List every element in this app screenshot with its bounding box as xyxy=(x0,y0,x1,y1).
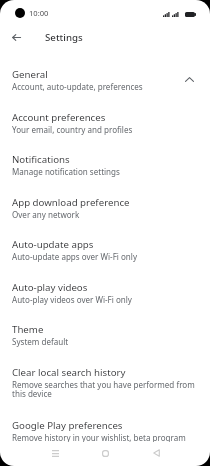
staticText: Remove history in your wishlist, beta pr… xyxy=(12,432,186,442)
button[interactable]: Auto-play videos xyxy=(0,281,210,324)
button[interactable]: Account preferences xyxy=(0,111,210,154)
staticText: Theme xyxy=(12,323,44,336)
staticText: Clear local search history xyxy=(12,366,126,379)
staticText: Settings xyxy=(45,31,83,44)
button[interactable]: Recent apps xyxy=(40,444,70,462)
staticText: Account preferences xyxy=(12,111,106,124)
staticText: Account, auto-update, preferences xyxy=(12,81,143,92)
staticText: Google Play preferences xyxy=(12,419,123,432)
button[interactable]: Clear local search history xyxy=(0,366,210,419)
button[interactable]: Home xyxy=(90,444,120,462)
staticText: Auto-play videos xyxy=(12,281,88,294)
staticText: Notifications xyxy=(12,153,70,166)
staticText: Auto-play videos over Wi-Fi only xyxy=(12,294,132,305)
button[interactable]: App download preference xyxy=(0,196,210,239)
staticText: App download preference xyxy=(12,196,130,209)
button[interactable]: Theme xyxy=(0,323,210,366)
staticText: Auto-update apps xyxy=(12,238,94,251)
button[interactable]: Notifications xyxy=(0,153,210,196)
button[interactable]: Google Play preferences xyxy=(0,419,210,442)
staticText: Over any network xyxy=(12,209,80,220)
staticText: Manage notification settings xyxy=(12,166,120,177)
staticText: System default xyxy=(12,336,69,347)
staticText: Auto-update apps over Wi-Fi only xyxy=(12,251,138,262)
staticText: 10:00 xyxy=(29,8,49,18)
button[interactable]: Auto-update apps xyxy=(0,238,210,281)
staticText: Your email, country and profiles xyxy=(12,124,133,135)
button[interactable]: Navigate up xyxy=(4,25,29,50)
button[interactable]: Back xyxy=(141,444,171,462)
staticText: Remove searches that you have performed … xyxy=(12,379,197,400)
staticText: General xyxy=(12,68,48,81)
button[interactable]: General xyxy=(0,68,210,111)
